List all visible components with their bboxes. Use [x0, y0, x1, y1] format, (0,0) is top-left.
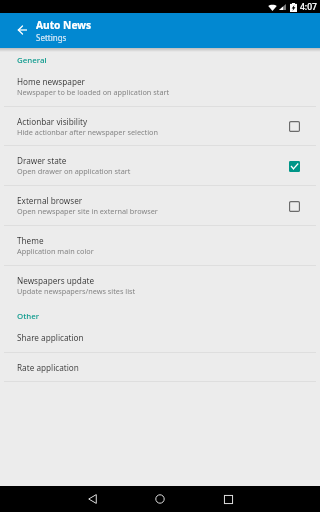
staticText: Home newspaper — [17, 76, 85, 87]
staticText: Open newspaper site in external browser — [17, 206, 158, 216]
staticText: Share application — [17, 332, 84, 343]
staticText: Newspaper to be loaded on application st… — [17, 87, 170, 97]
staticText: Theme — [17, 235, 44, 246]
button[interactable]: Newspapers update — [0, 266, 320, 305]
staticText: Rate application — [17, 362, 79, 373]
button[interactable]: Rate application — [0, 353, 320, 381]
staticText: Application main color — [17, 246, 94, 256]
staticText: Open drawer on application start — [17, 166, 131, 176]
staticText: Hide actionbar after newspaper selection — [17, 127, 158, 137]
button[interactable]: Home newspaper — [0, 67, 320, 106]
staticText: Drawer state — [17, 155, 67, 166]
staticText: External browser — [17, 195, 83, 206]
staticText: Other — [17, 311, 40, 322]
staticText: Settings — [36, 32, 67, 43]
staticText: Actionbar visibility — [17, 116, 88, 127]
staticText: 4:07 — [300, 1, 317, 13]
button[interactable]: Theme — [0, 226, 320, 265]
button[interactable]: Navigate up — [10, 19, 34, 43]
staticText: General — [17, 55, 47, 66]
button[interactable]: Share application — [0, 323, 320, 352]
staticText: Newspapers update — [17, 275, 95, 286]
button[interactable]: Back — [69, 486, 115, 512]
button[interactable]: Actionbar visibility — [0, 107, 320, 145]
button[interactable]: Drawer state — [0, 146, 320, 185]
button[interactable]: Recent apps — [205, 486, 251, 512]
staticText: Update newspapers/news sites list — [17, 286, 136, 296]
staticText: Auto News — [36, 18, 92, 32]
button[interactable]: Home — [137, 486, 183, 512]
button[interactable]: External browser — [0, 186, 320, 225]
